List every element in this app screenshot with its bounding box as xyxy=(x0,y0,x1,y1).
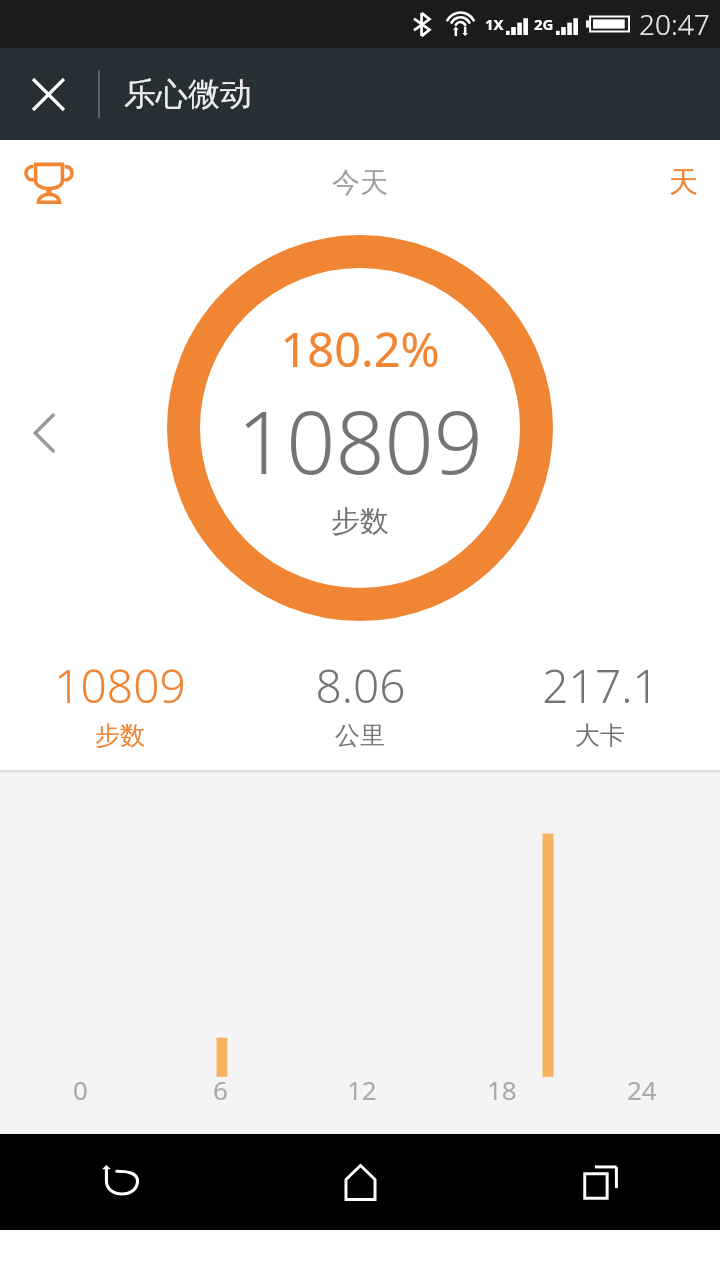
button[interactable]: 天 xyxy=(655,154,712,211)
button[interactable]: Back xyxy=(0,1134,240,1230)
staticText: 0 xyxy=(73,1072,88,1107)
staticText: 8.06 xyxy=(315,654,406,717)
staticText: 10809 xyxy=(237,382,483,499)
button[interactable]: Close xyxy=(14,60,82,128)
staticText: 步数 xyxy=(331,503,389,540)
staticText: 步数 xyxy=(95,720,145,751)
button[interactable]: 180.2% xyxy=(167,235,553,621)
button[interactable]: Achievements xyxy=(10,143,88,221)
button[interactable]: 0 xyxy=(0,772,720,1134)
staticText: 24 xyxy=(627,1072,657,1107)
button[interactable]: 10809 xyxy=(0,642,240,763)
button[interactable]: Home xyxy=(240,1134,480,1230)
button[interactable]: Recent apps xyxy=(480,1134,720,1230)
staticText: 乐心微动 xyxy=(124,74,252,114)
staticText: 10809 xyxy=(54,654,186,717)
staticText: 今天 xyxy=(332,165,388,200)
staticText: 1X xyxy=(485,14,504,34)
staticText: 217.1 xyxy=(542,654,659,717)
staticText: 12 xyxy=(347,1072,377,1107)
staticText: 20:47 xyxy=(639,5,710,43)
button[interactable]: 8.06 xyxy=(240,642,480,763)
button[interactable]: 217.1 xyxy=(480,642,720,763)
staticText: 2G xyxy=(534,14,554,34)
staticText: 18 xyxy=(487,1072,517,1107)
button[interactable]: Previous day xyxy=(8,397,80,469)
staticText: 6 xyxy=(213,1072,228,1107)
staticText: 天 xyxy=(669,164,698,201)
staticText: 大卡 xyxy=(575,720,625,751)
staticText: 公里 xyxy=(335,720,385,751)
staticText: 180.2% xyxy=(280,317,440,381)
